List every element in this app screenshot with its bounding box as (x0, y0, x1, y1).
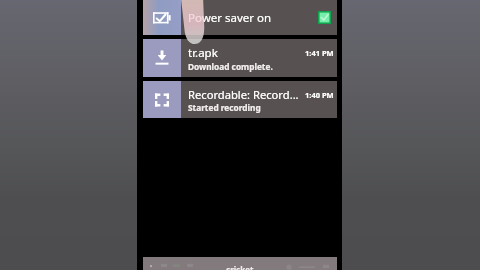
staticText: Power saver on (188, 10, 272, 26)
button[interactable]: Toggle power saver (318, 11, 331, 24)
staticText: tr.apk (188, 45, 218, 61)
staticText: Recordable: Record... (188, 87, 299, 102)
other: Fingertip (179, 0, 207, 44)
button[interactable]: Power saver on (143, 0, 337, 35)
staticText: Download complete. (188, 61, 273, 72)
staticText: Started recording (188, 102, 261, 113)
staticText: 1:41 PM (305, 48, 334, 58)
button[interactable]: Recordable: Record... (143, 81, 337, 118)
staticText: 1:40 PM (305, 90, 334, 100)
staticText: cricket (226, 264, 254, 270)
button[interactable]: tr.apk (143, 39, 337, 77)
